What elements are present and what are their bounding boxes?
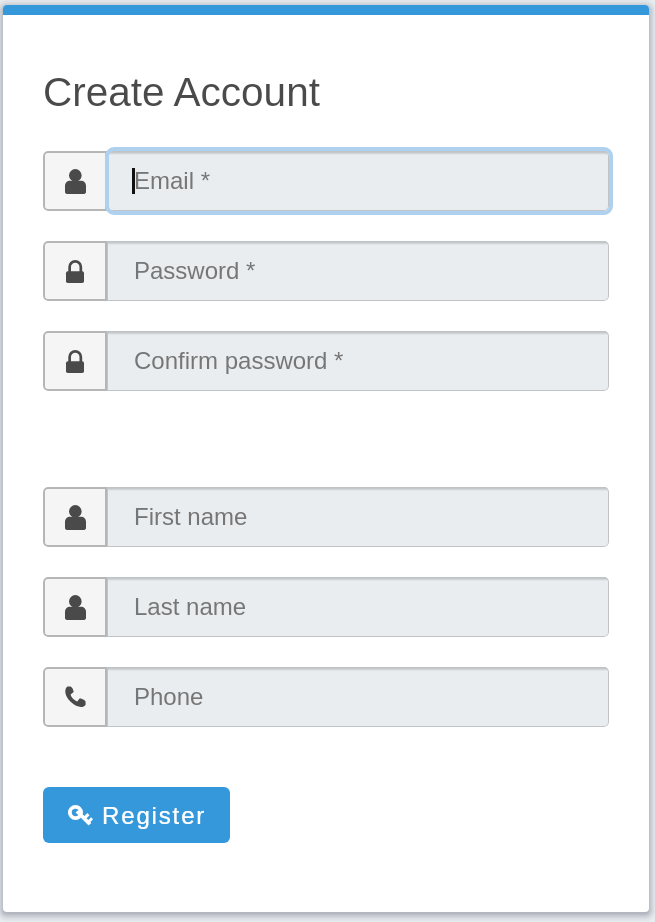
- button[interactable]: Last name: [43, 577, 609, 637]
- staticText: First name: [134, 503, 248, 530]
- button[interactable]: Confirm password *: [43, 331, 609, 391]
- staticText: Last name: [134, 593, 247, 620]
- staticText: Phone: [134, 683, 204, 710]
- staticText: Email *: [134, 167, 211, 194]
- button[interactable]: First name: [43, 487, 609, 547]
- button[interactable]: Register: [43, 787, 230, 843]
- staticText: Create Account: [43, 69, 320, 114]
- staticText: Password *: [134, 257, 256, 284]
- button[interactable]: Phone: [43, 667, 609, 727]
- button[interactable]: Password *: [43, 241, 609, 301]
- staticText: Register: [102, 802, 207, 829]
- staticText: Confirm password *: [134, 347, 344, 374]
- button[interactable]: Email *: [43, 151, 609, 211]
